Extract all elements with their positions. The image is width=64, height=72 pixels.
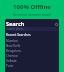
staticText: Bengaluru (6, 49, 21, 53)
button[interactable]: Filter (54, 22, 58, 26)
button[interactable]: Chennai (6, 53, 58, 58)
button[interactable]: Mumbai (6, 38, 58, 43)
staticText: Search (6, 20, 25, 27)
staticText: Recent Searches (6, 33, 31, 37)
staticText: Pune (6, 64, 14, 68)
staticText: No internet connection needed (13, 13, 51, 17)
button[interactable]: Bengaluru (6, 48, 58, 53)
button[interactable]: New Delhi (6, 43, 58, 48)
staticText: Kolkata (6, 59, 17, 63)
staticText: 100% Offline (13, 3, 51, 11)
button[interactable]: Pune (6, 63, 58, 68)
staticText: Chennai (6, 54, 18, 58)
button[interactable]: Search places... (6, 27, 58, 31)
staticText: Search places... (7, 27, 26, 31)
staticText: Mumbai (6, 39, 18, 43)
button[interactable]: Kolkata (6, 58, 58, 63)
staticText: New Delhi (6, 44, 21, 48)
